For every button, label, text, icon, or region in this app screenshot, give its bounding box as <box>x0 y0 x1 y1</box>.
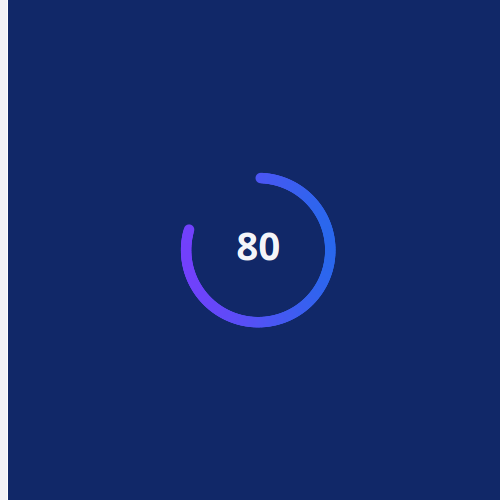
staticText: 80 percent <box>236 220 280 271</box>
